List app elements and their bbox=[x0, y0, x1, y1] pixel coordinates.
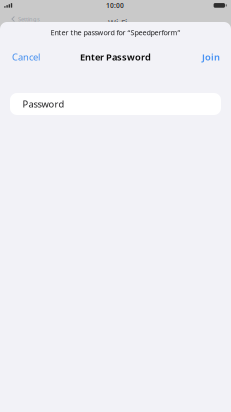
staticText: Join bbox=[202, 51, 220, 63]
button[interactable]: Join bbox=[191, 43, 231, 71]
button[interactable]: Cancel bbox=[0, 43, 52, 71]
staticText: 10:00 bbox=[106, 1, 124, 10]
staticText: Settings bbox=[18, 15, 40, 23]
button[interactable]: Password bbox=[10, 93, 221, 115]
staticText: Enter Password bbox=[80, 51, 151, 63]
staticText: Cancel bbox=[12, 51, 40, 63]
staticText: Enter the password for “Speedperform” bbox=[50, 28, 180, 37]
staticText: Wi-Fi bbox=[108, 17, 127, 28]
staticText: Password bbox=[22, 98, 64, 110]
button[interactable]: Settings bbox=[0, 13, 40, 23]
